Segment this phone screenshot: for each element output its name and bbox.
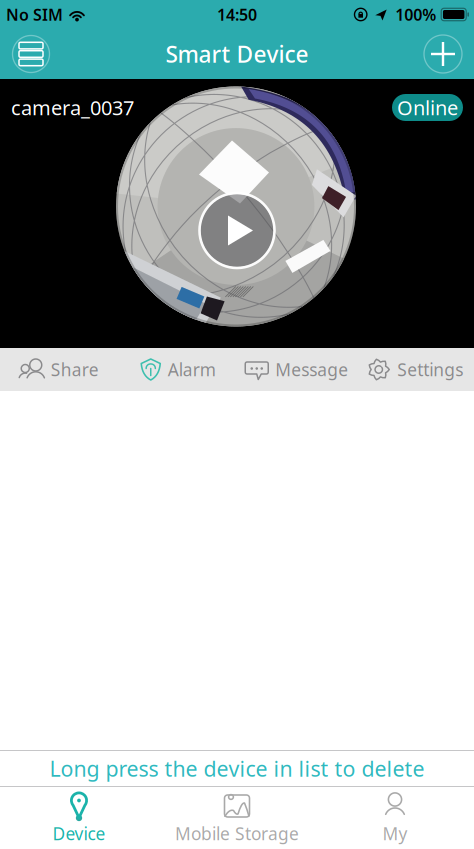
- staticText: No SIM: [6, 4, 63, 25]
- staticText: Share: [51, 358, 99, 381]
- staticText: Online: [397, 94, 458, 121]
- staticText: My: [382, 822, 407, 845]
- staticText: Message: [275, 358, 348, 381]
- staticText: 14:50: [217, 4, 257, 25]
- button[interactable]: Settings: [355, 348, 474, 391]
- button[interactable]: Alarm: [118, 348, 237, 391]
- staticText: Alarm: [168, 358, 216, 381]
- button[interactable]: Long press the device in list to delete: [0, 750, 474, 787]
- staticText: Settings: [397, 358, 463, 381]
- button[interactable]: Mobile Storage: [158, 787, 316, 849]
- staticText: camera_0037: [11, 94, 134, 121]
- button[interactable]: Message: [237, 348, 355, 391]
- staticText: Mobile Storage: [175, 822, 299, 845]
- staticText: 100%: [395, 4, 436, 25]
- staticText: Long press the device in list to delete: [49, 754, 424, 783]
- button[interactable]: Share: [0, 348, 118, 391]
- staticText: Smart Device: [165, 39, 308, 69]
- button[interactable]: Device: [0, 787, 158, 849]
- staticText: Device: [52, 822, 105, 845]
- button[interactable]: My: [316, 787, 474, 849]
- button[interactable]: Menu: [8, 31, 54, 77]
- button[interactable]: Add device: [420, 31, 466, 77]
- button[interactable]: Online: [392, 94, 463, 121]
